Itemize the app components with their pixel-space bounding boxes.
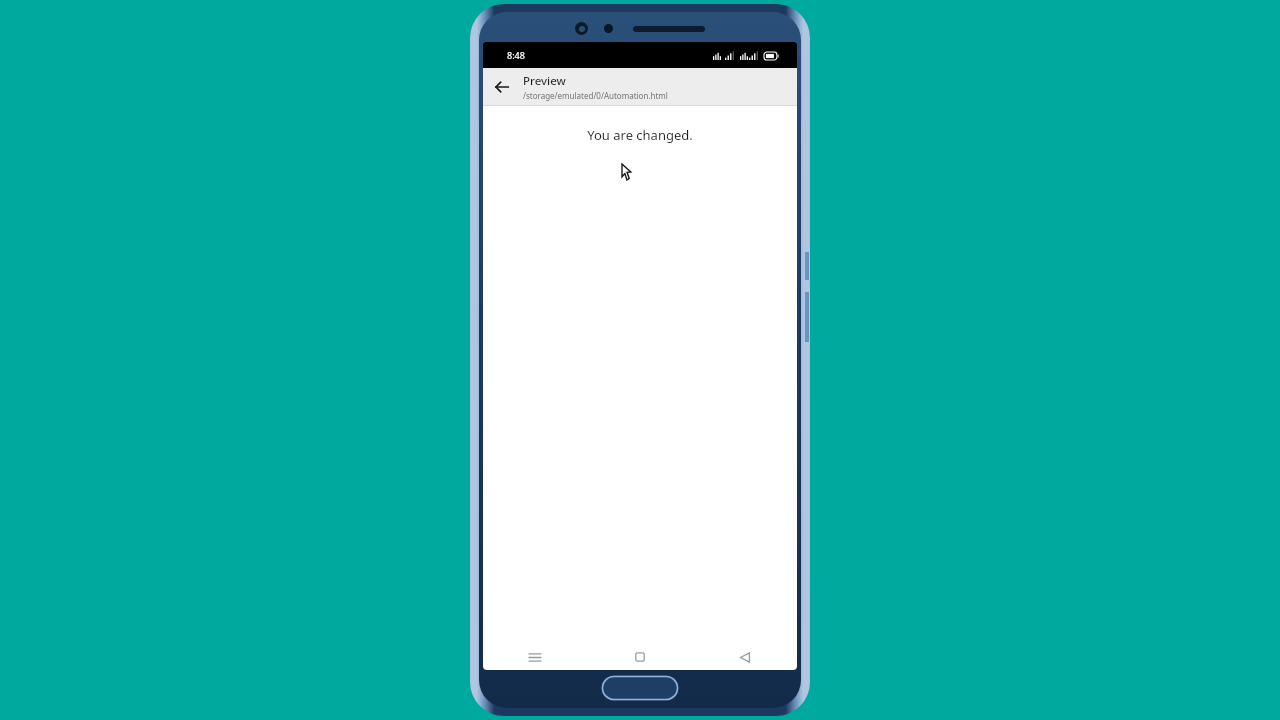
staticText: Preview	[523, 73, 566, 89]
staticText: /storage/emulated/0/Automation.html	[523, 90, 668, 101]
button[interactable]: Back	[483, 68, 521, 105]
button[interactable]: Back	[692, 644, 797, 670]
button[interactable]: Recent apps	[483, 644, 587, 670]
button[interactable]: Home button	[601, 675, 679, 701]
staticText: 8:48	[507, 49, 525, 61]
button[interactable]: Home	[587, 644, 692, 670]
staticText: You are changed.	[483, 126, 797, 144]
